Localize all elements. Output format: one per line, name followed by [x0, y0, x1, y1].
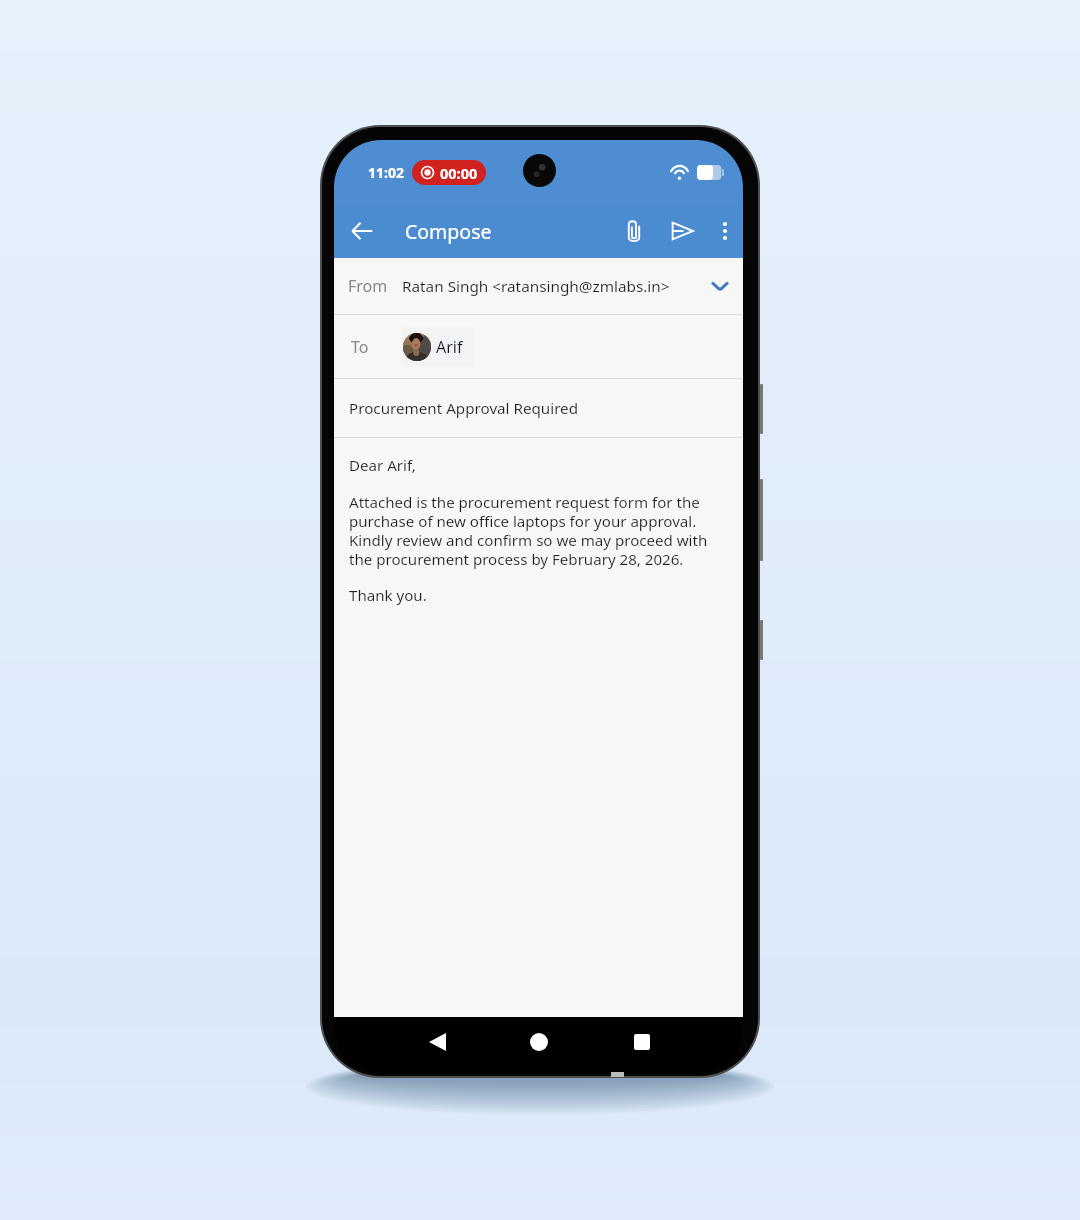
button[interactable]: Procurement Approval Required	[334, 379, 743, 437]
staticText: From	[348, 275, 388, 297]
staticText: Arif	[436, 336, 463, 358]
staticText: Dear Arif,	[349, 455, 416, 476]
staticText: 11:02	[368, 163, 404, 182]
staticText: Ratan Singh <ratansingh@zmlabs.in>	[402, 276, 670, 297]
staticText: Procurement Approval Required	[349, 398, 579, 419]
staticText: Compose	[405, 218, 492, 245]
staticText: Thank you.	[349, 585, 427, 606]
button[interactable]: Compose	[405, 204, 492, 258]
staticText: 00:00	[440, 163, 478, 183]
button[interactable]: Send	[660, 204, 704, 258]
staticText: Attached is the procurement request form…	[349, 492, 708, 569]
button[interactable]: Dear Arif,	[334, 438, 743, 1017]
button[interactable]: From	[334, 258, 743, 314]
button[interactable]: Back	[412, 1013, 462, 1070]
button[interactable]: To	[334, 315, 743, 378]
button[interactable]: Attach file	[612, 204, 656, 258]
button[interactable]: Back	[340, 204, 383, 258]
button[interactable]: Home	[514, 1013, 564, 1070]
button[interactable]: Recent apps	[617, 1013, 667, 1070]
button[interactable]: Show more recipients	[707, 273, 733, 299]
staticText: To	[351, 336, 369, 358]
button[interactable]: More options	[705, 204, 743, 258]
